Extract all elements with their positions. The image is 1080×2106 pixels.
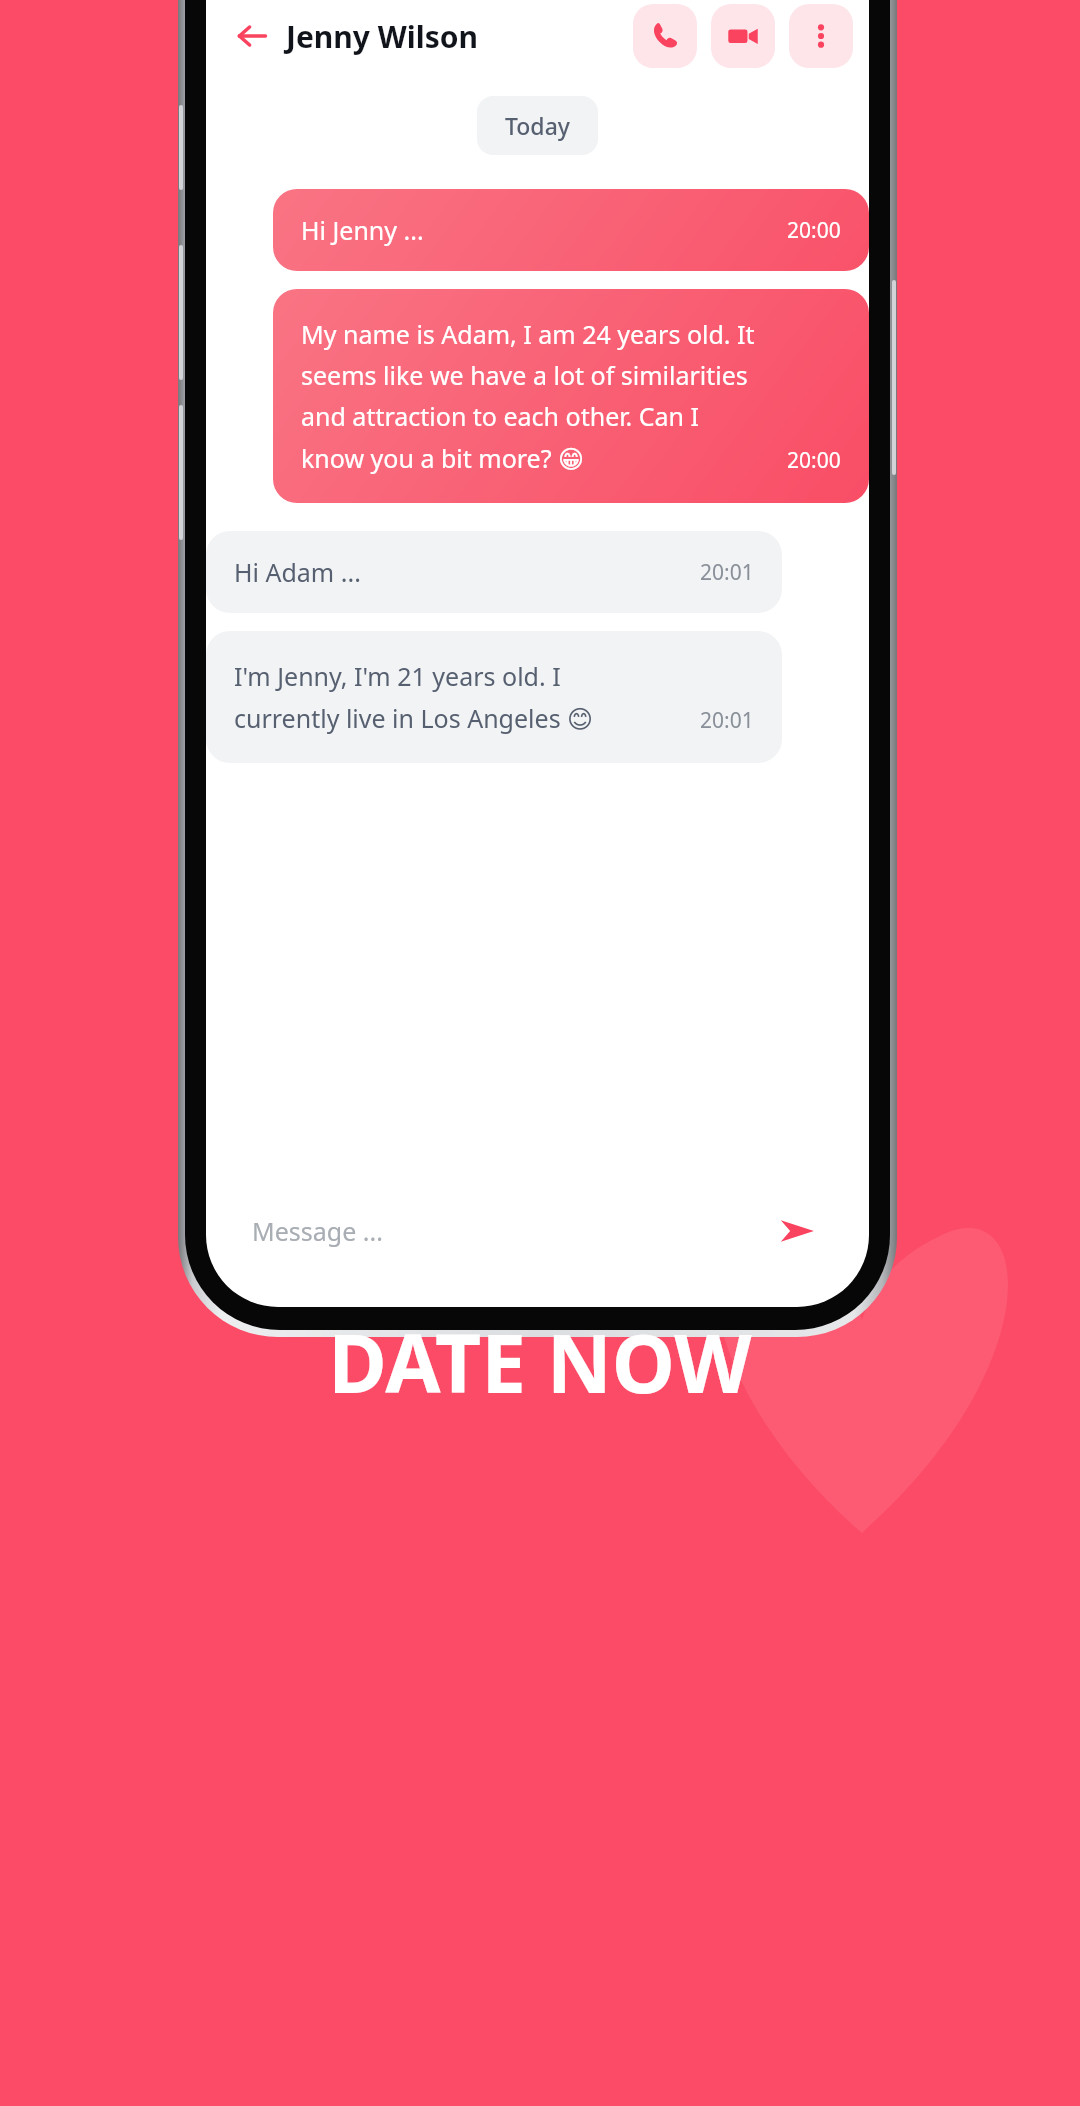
button[interactable]: Back	[226, 10, 278, 62]
button[interactable]: My name is Adam, I am 24 years old. It s…	[273, 289, 869, 503]
staticText: 20:00	[787, 446, 841, 475]
button[interactable]: I'm Jenny, I'm 21 years old. I currently…	[206, 631, 782, 763]
button[interactable]: Video call	[711, 4, 775, 68]
staticText: DATE NOW	[328, 1307, 752, 1416]
staticText: Hi Adam ...	[234, 555, 361, 589]
button[interactable]: More options	[789, 4, 853, 68]
button[interactable]: Today	[477, 96, 598, 155]
button[interactable]: Send	[771, 1205, 823, 1257]
staticText: Hi Jenny ...	[301, 213, 424, 247]
staticText: Today	[505, 110, 570, 141]
button[interactable]: Hi Jenny ...	[273, 189, 869, 271]
button[interactable]: Call	[633, 4, 697, 68]
button[interactable]: Hi Adam ...	[206, 531, 782, 613]
staticText: 20:01	[700, 558, 754, 587]
staticText: Message ...	[252, 1214, 383, 1248]
staticText: 20:01	[700, 706, 754, 735]
button[interactable]: Message ...	[222, 1181, 853, 1281]
staticText: Jenny Wilson	[286, 16, 478, 57]
staticText: 20:00	[787, 216, 841, 245]
staticText: I'm Jenny, I'm 21 years old. I currently…	[234, 659, 666, 735]
staticText: My name is Adam, I am 24 years old. It s…	[301, 317, 757, 475]
